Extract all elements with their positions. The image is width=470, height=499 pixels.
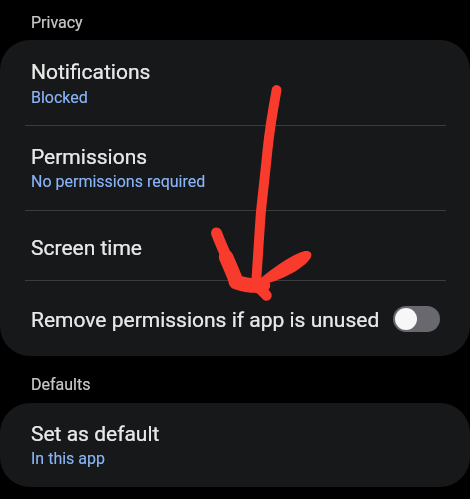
staticText: Remove permissions if app is unused <box>31 308 380 333</box>
button[interactable]: Remove permissions if app is unused togg… <box>393 306 440 332</box>
button[interactable] <box>0 41 470 126</box>
staticText: Privacy <box>31 13 83 32</box>
staticText: Defaults <box>31 375 91 394</box>
button[interactable] <box>0 403 470 487</box>
staticText: Set as default <box>31 422 160 447</box>
staticText: Screen time <box>31 236 142 261</box>
button[interactable] <box>0 281 470 356</box>
staticText: Permissions <box>31 145 148 170</box>
staticText: Notifications <box>31 60 151 85</box>
staticText: No permissions required <box>31 172 206 191</box>
staticText: Blocked <box>31 88 88 107</box>
button[interactable] <box>0 126 470 211</box>
staticText: In this app <box>31 449 105 468</box>
button[interactable] <box>0 211 470 281</box>
